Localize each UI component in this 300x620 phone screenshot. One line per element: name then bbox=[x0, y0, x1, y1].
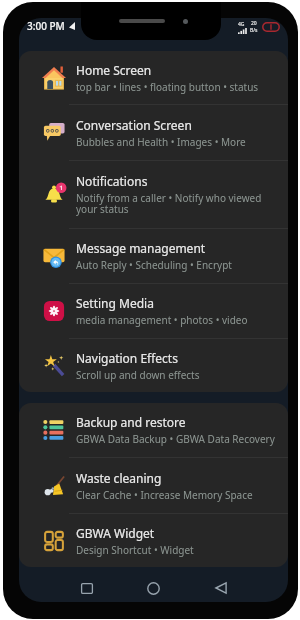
staticText: media management • photos • video bbox=[76, 313, 248, 327]
button[interactable]: Waste cleaning bbox=[19, 458, 288, 513]
button[interactable]: Message management bbox=[19, 229, 288, 283]
staticText: Backup and restore bbox=[76, 414, 186, 430]
staticText: Clear Cache • Increase Memory Space bbox=[76, 488, 253, 502]
staticText: Home Screen bbox=[76, 62, 152, 78]
button[interactable]: Setting Media bbox=[19, 284, 288, 338]
staticText: Auto Reply • Scheduling • Encrypt bbox=[76, 258, 232, 272]
button[interactable]: Home bbox=[120, 574, 187, 602]
staticText: B/s bbox=[250, 27, 258, 34]
staticText: Conversation Screen bbox=[76, 117, 192, 133]
staticText: Message management bbox=[76, 240, 206, 256]
staticText: GBWA Data Backup • GBWA Data Recovery bbox=[76, 432, 275, 446]
button[interactable]: Conversation Screen bbox=[19, 105, 288, 160]
staticText: 20 bbox=[251, 20, 257, 27]
button[interactable]: Recents bbox=[53, 574, 120, 602]
staticText: Notify from a caller • Notify who viewed… bbox=[76, 191, 285, 216]
staticText: Design Shortcut • Widget bbox=[76, 543, 194, 557]
button[interactable]: GBWA Widget bbox=[19, 514, 288, 567]
staticText: Notifications bbox=[76, 173, 148, 189]
staticText: top bar • lines • floating button • stat… bbox=[76, 80, 259, 94]
button[interactable]: Notifications bbox=[19, 161, 288, 228]
staticText: Navigation Effects bbox=[76, 350, 178, 366]
button[interactable]: Backup and restore bbox=[19, 403, 288, 457]
button[interactable]: Back bbox=[187, 574, 254, 602]
button[interactable]: Navigation Effects bbox=[19, 339, 288, 392]
staticText: Waste cleaning bbox=[76, 470, 162, 486]
staticText: GBWA Widget bbox=[76, 525, 155, 541]
staticText: Bubbles and Health • Images • More bbox=[76, 135, 246, 149]
staticText: 4G bbox=[238, 21, 245, 28]
button[interactable]: Home Screen bbox=[19, 51, 288, 104]
staticText: 3:00 PM bbox=[27, 19, 65, 33]
staticText: Scroll up and down effects bbox=[76, 368, 200, 382]
staticText: Setting Media bbox=[76, 295, 154, 311]
